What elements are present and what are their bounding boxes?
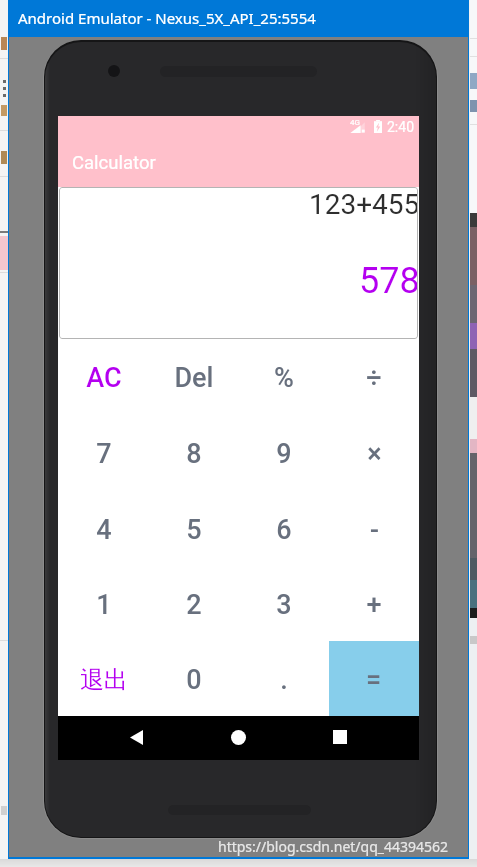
staticText: AC <box>86 362 122 394</box>
staticText: 3 <box>276 589 292 621</box>
staticText: 4G <box>350 118 360 127</box>
staticText: Android Emulator - Nexus_5X_API_25:5554 <box>18 8 316 28</box>
button[interactable]: ÷ <box>329 339 419 415</box>
button[interactable]: 8 <box>149 415 239 491</box>
staticText: 9 <box>276 438 292 470</box>
staticText: . <box>280 664 288 696</box>
staticText: ÷ <box>366 362 382 394</box>
button[interactable]: × <box>329 415 419 491</box>
staticText: 2 <box>186 589 202 621</box>
button[interactable]: Home <box>216 715 260 759</box>
staticText: 8 <box>186 438 202 470</box>
button[interactable]: 2 <box>149 566 239 641</box>
staticText: 123+455 <box>309 188 418 221</box>
staticText: + <box>366 589 382 621</box>
button[interactable]: AC <box>58 339 149 415</box>
button[interactable]: Recents <box>318 715 362 759</box>
button[interactable]: % <box>239 339 329 415</box>
button[interactable]: 退出 <box>58 641 149 716</box>
button[interactable]: Del <box>149 339 239 415</box>
button[interactable]: 3 <box>239 566 329 641</box>
button[interactable]: 5 <box>149 491 239 566</box>
button[interactable]: 0 <box>149 641 239 716</box>
button[interactable]: 4 <box>58 491 149 566</box>
button[interactable]: - <box>329 491 419 566</box>
staticText: 退出 <box>80 665 128 695</box>
staticText: 4 <box>96 514 112 546</box>
button[interactable]: Back <box>114 715 158 759</box>
button[interactable]: 6 <box>239 491 329 566</box>
staticText: Del <box>174 362 214 394</box>
button[interactable]: . <box>239 641 329 716</box>
staticText: https://blog.csdn.net/qq_44394562 <box>218 837 449 856</box>
staticText: 578 <box>359 260 418 302</box>
button[interactable]: 7 <box>58 415 149 491</box>
staticText: 7 <box>96 438 112 470</box>
staticText: 0 <box>186 664 202 696</box>
staticText: × <box>367 438 382 470</box>
staticText: % <box>274 362 294 394</box>
staticText: = <box>366 664 382 696</box>
staticText: 5 <box>186 514 202 546</box>
button[interactable]: 1 <box>58 566 149 641</box>
staticText: Calculator <box>72 152 156 174</box>
button[interactable]: 9 <box>239 415 329 491</box>
staticText: 1 <box>96 589 112 621</box>
button[interactable]: + <box>329 566 419 641</box>
staticText: - <box>370 514 379 546</box>
staticText: 6 <box>276 514 292 546</box>
button[interactable]: = <box>329 641 419 716</box>
staticText: 2:40 <box>387 119 414 135</box>
